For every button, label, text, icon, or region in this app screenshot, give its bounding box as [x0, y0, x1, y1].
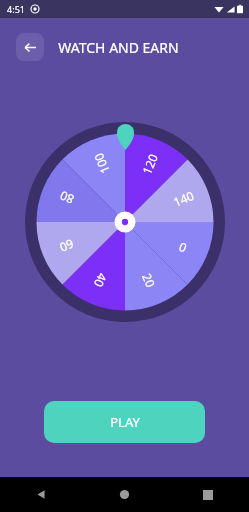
staticText: 100 — [90, 151, 113, 176]
staticText: 4:51 — [7, 3, 25, 15]
button[interactable]: Back — [0, 477, 83, 512]
staticText: 0 — [177, 238, 189, 255]
staticText: WATCH AND EARN — [58, 38, 179, 57]
button[interactable]: PLAY — [44, 401, 205, 443]
button[interactable]: Home — [83, 477, 166, 512]
button[interactable]: Back — [16, 33, 44, 61]
staticText: PLAY — [110, 413, 140, 431]
staticText: 80 — [57, 188, 76, 208]
staticText: 140 — [171, 187, 196, 210]
staticText: 40 — [91, 271, 111, 290]
staticText: 20 — [139, 271, 159, 290]
button[interactable]: Recent apps — [166, 477, 249, 512]
staticText: 120 — [138, 151, 161, 177]
staticText: 60 — [57, 236, 76, 256]
